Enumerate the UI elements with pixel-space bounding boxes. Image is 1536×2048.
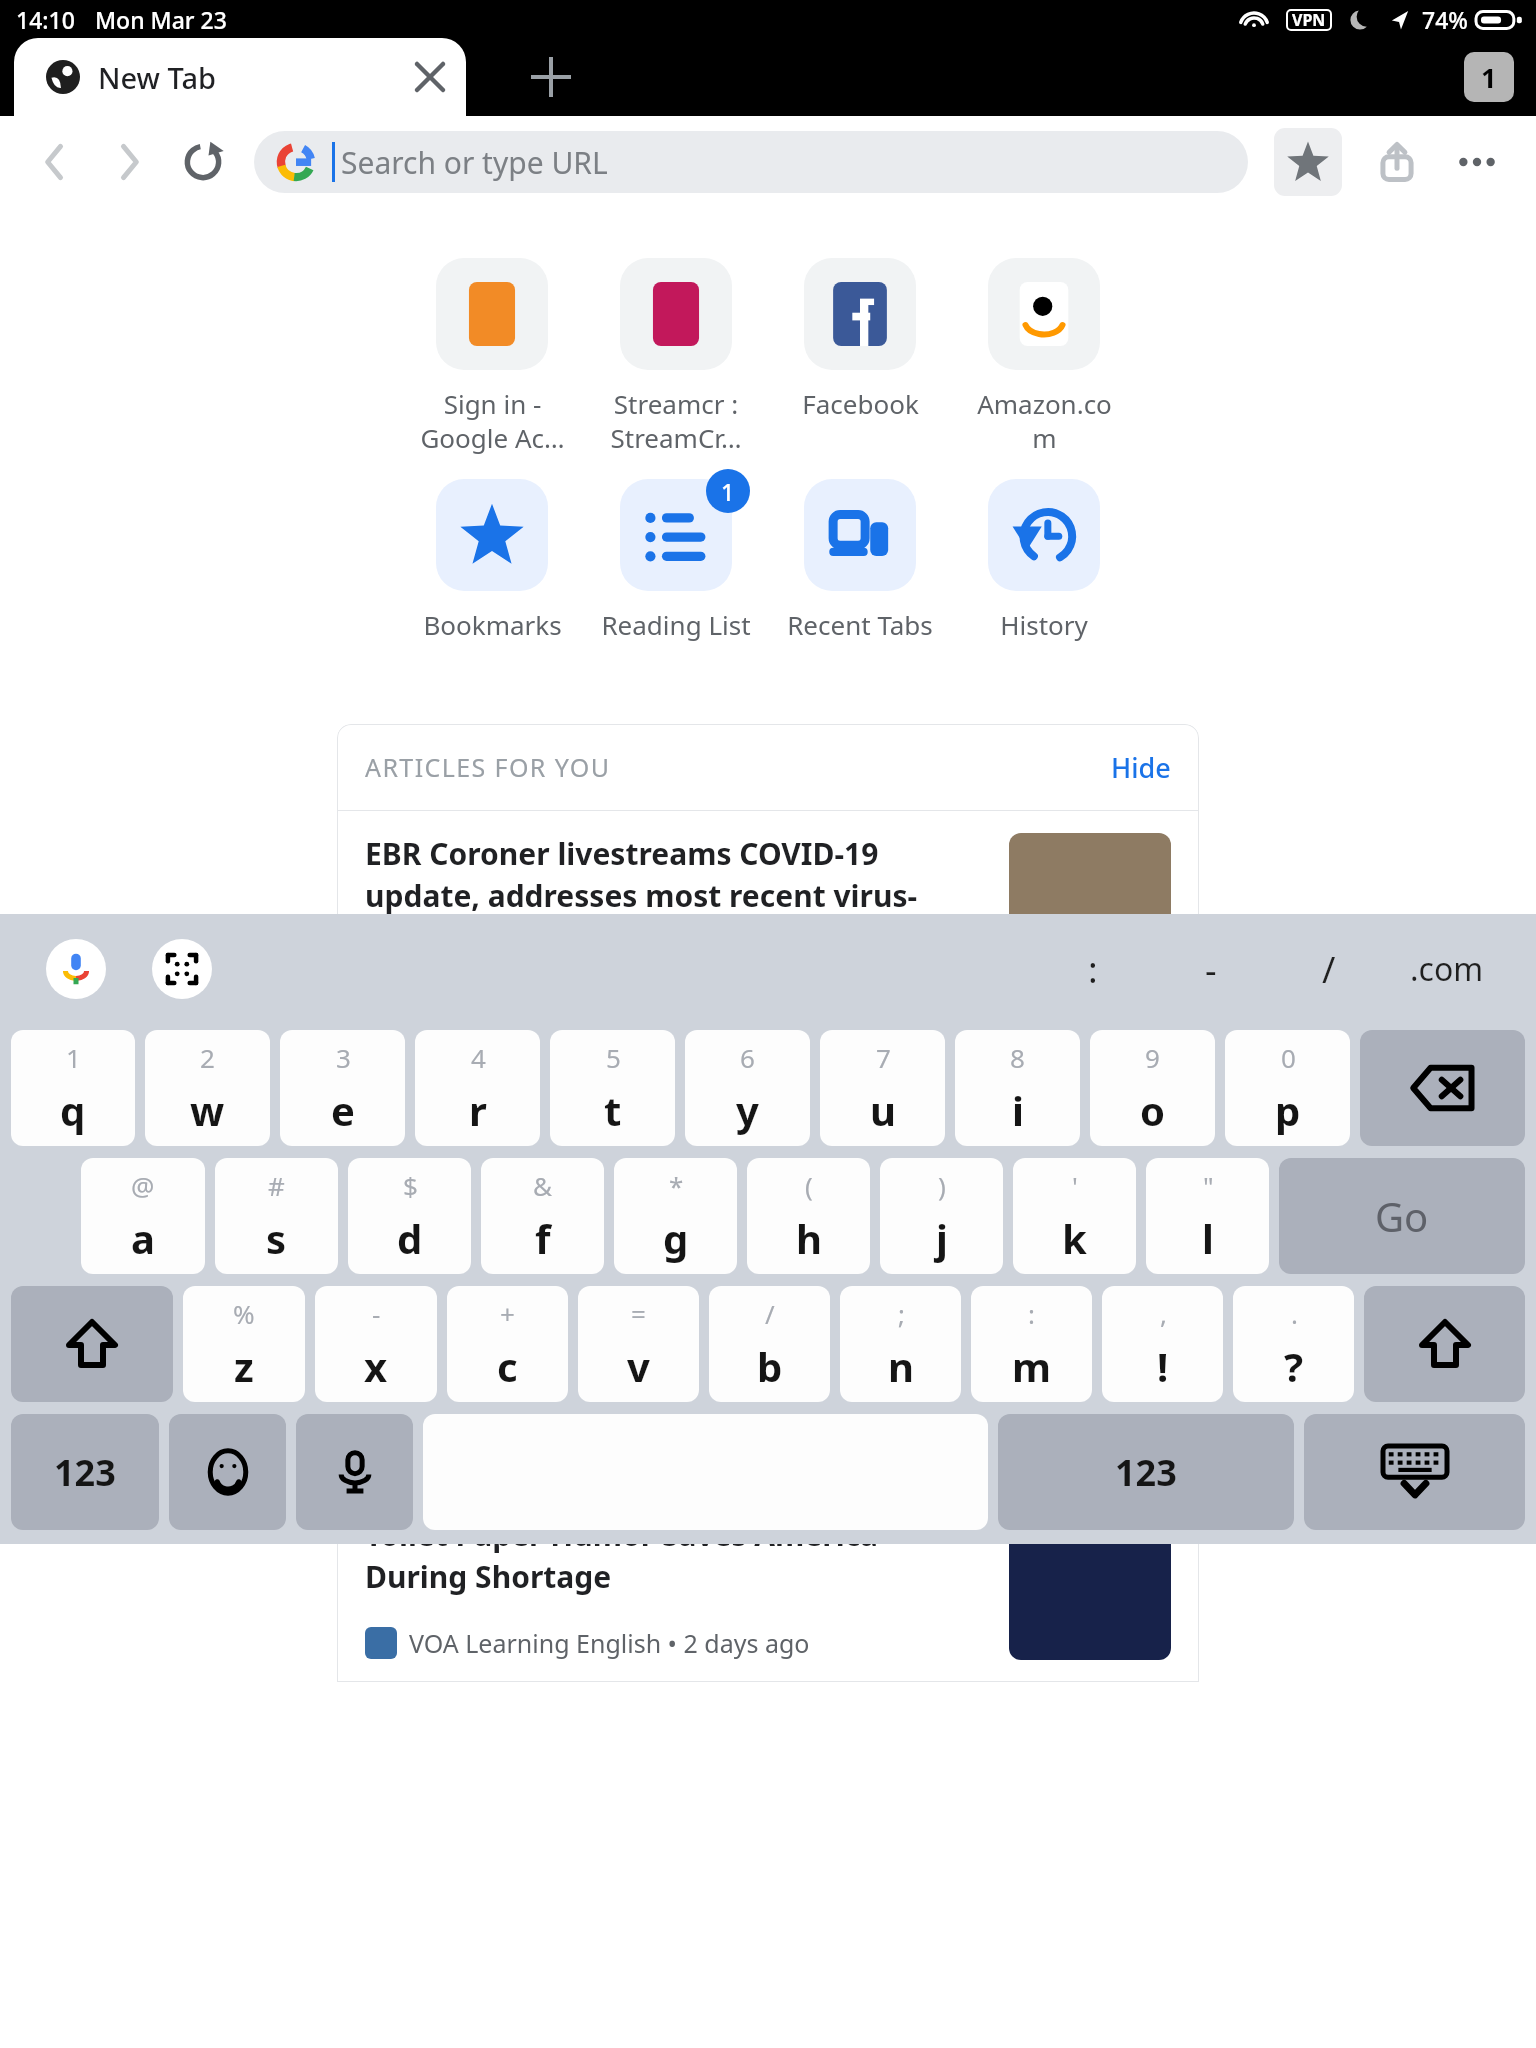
button[interactable]: Shift bbox=[11, 1286, 173, 1402]
button[interactable]: 7 bbox=[820, 1030, 945, 1146]
staticText: - bbox=[1205, 945, 1217, 994]
button[interactable]: 9 bbox=[1090, 1030, 1215, 1146]
button[interactable]: .com bbox=[1388, 926, 1506, 1012]
button[interactable]: ' bbox=[1013, 1158, 1136, 1274]
button[interactable]: Emoji bbox=[169, 1414, 286, 1530]
staticText: Bookmarks bbox=[423, 607, 562, 642]
button[interactable]: Bookmark bbox=[1274, 128, 1342, 196]
staticText: s bbox=[266, 1211, 287, 1265]
button[interactable]: @ bbox=[81, 1158, 205, 1274]
button[interactable]: More options bbox=[1440, 125, 1514, 199]
staticText: Facebook bbox=[802, 386, 919, 421]
staticText: c bbox=[497, 1339, 518, 1393]
button[interactable]: - bbox=[1152, 926, 1270, 1012]
staticText: e bbox=[331, 1083, 355, 1137]
button[interactable]: & bbox=[481, 1158, 604, 1274]
button[interactable]: " bbox=[1146, 1158, 1269, 1274]
button[interactable]: Tab switcher bbox=[1464, 52, 1514, 102]
button[interactable]: Amazon.co m bbox=[952, 258, 1136, 455]
button[interactable]: Hide keyboard bbox=[1304, 1414, 1525, 1530]
button[interactable]: Streamcr : StreamCr… bbox=[584, 258, 768, 455]
staticText: 4 bbox=[471, 1040, 486, 1075]
staticText: w bbox=[190, 1083, 225, 1137]
button[interactable]: Share bbox=[1360, 125, 1434, 199]
button[interactable]: Go bbox=[1279, 1158, 1525, 1274]
staticText: 8 bbox=[1010, 1040, 1025, 1075]
button[interactable]: * bbox=[614, 1158, 737, 1274]
button[interactable]: New Tab bbox=[14, 38, 466, 116]
button[interactable]: 6 bbox=[685, 1030, 810, 1146]
staticText: @ bbox=[131, 1168, 155, 1203]
staticText: p bbox=[1275, 1083, 1301, 1137]
staticText: 2 bbox=[200, 1040, 215, 1075]
staticText: u bbox=[870, 1083, 896, 1137]
staticText: z bbox=[234, 1339, 254, 1393]
staticText: , bbox=[1160, 1296, 1167, 1331]
staticText: Toilet Paper Humor Saves America During … bbox=[365, 1514, 879, 1597]
button[interactable]: ARTICLES FOR YOU bbox=[337, 724, 1199, 810]
button[interactable]: 1 bbox=[11, 1030, 135, 1146]
staticText: ? bbox=[1284, 1339, 1304, 1393]
staticText: 123 bbox=[54, 1448, 116, 1497]
staticText: Search or type URL bbox=[341, 142, 608, 183]
button[interactable]: EBR Coroner livestreams COVID-19 update,… bbox=[337, 811, 1199, 1141]
button[interactable]: Voice input bbox=[296, 1414, 413, 1530]
button[interactable]: - bbox=[315, 1286, 437, 1402]
button[interactable]: Sign in - Google Ac… bbox=[400, 258, 584, 455]
button[interactable]: ; bbox=[840, 1286, 961, 1402]
button[interactable]: Toilet Paper Humor Saves America During … bbox=[337, 1492, 1199, 1682]
button[interactable]: $ bbox=[348, 1158, 471, 1274]
button[interactable]: Back bbox=[18, 125, 92, 199]
button[interactable]: Backspace bbox=[1360, 1030, 1525, 1146]
staticText: Hide bbox=[1111, 749, 1171, 786]
staticText: o bbox=[1140, 1083, 1165, 1137]
button[interactable]: Facebook bbox=[768, 258, 952, 421]
button[interactable]: Shift bbox=[1364, 1286, 1525, 1402]
button[interactable]: . bbox=[1233, 1286, 1354, 1402]
button[interactable]: New tab bbox=[508, 38, 594, 116]
button[interactable]: , bbox=[1102, 1286, 1223, 1402]
button[interactable]: / bbox=[709, 1286, 830, 1402]
button[interactable]: TechRadar • 8 hours ago bbox=[337, 1142, 1199, 1292]
button[interactable]: 1 bbox=[584, 479, 768, 642]
staticText: m bbox=[1012, 1339, 1051, 1393]
button[interactable]: 4 bbox=[415, 1030, 540, 1146]
button[interactable]: Bookmarks bbox=[400, 479, 584, 642]
button[interactable]: Close tab bbox=[398, 45, 462, 109]
button[interactable]: + bbox=[447, 1286, 568, 1402]
button[interactable]: = bbox=[578, 1286, 699, 1402]
button[interactable]: / bbox=[1270, 926, 1388, 1012]
button[interactable]: Reload bbox=[166, 125, 240, 199]
button[interactable]: Search or type URL bbox=[254, 131, 1248, 193]
button[interactable]: 3 bbox=[280, 1030, 405, 1146]
staticText: + bbox=[500, 1296, 515, 1331]
staticText: y bbox=[736, 1083, 759, 1137]
button[interactable]: 8 bbox=[955, 1030, 1080, 1146]
staticText: h bbox=[796, 1211, 822, 1265]
button[interactable]: 123 bbox=[998, 1414, 1294, 1530]
button[interactable]: 2 bbox=[145, 1030, 270, 1146]
button[interactable]: Recent Tabs bbox=[768, 479, 952, 642]
staticText: ! bbox=[1157, 1339, 1169, 1393]
staticText: Reading List bbox=[601, 607, 751, 642]
button[interactable]: Google Lens bbox=[152, 939, 212, 999]
button[interactable]: : bbox=[1034, 926, 1152, 1012]
button[interactable]: ( bbox=[747, 1158, 870, 1274]
button[interactable]: 5 bbox=[550, 1030, 675, 1146]
button[interactable]: Forward bbox=[92, 125, 166, 199]
button[interactable]: : bbox=[971, 1286, 1092, 1402]
staticText: 1 bbox=[66, 1040, 81, 1075]
button[interactable]: How to clean and sanitize Xbox controlle… bbox=[337, 1293, 1199, 1491]
button[interactable]: Voice search bbox=[46, 939, 106, 999]
staticText: : bbox=[1088, 945, 1098, 994]
button[interactable]: 123 bbox=[11, 1414, 159, 1530]
button[interactable]: ) bbox=[880, 1158, 1003, 1274]
staticText: ARTICLES FOR YOU bbox=[365, 750, 611, 784]
button[interactable]: % bbox=[183, 1286, 305, 1402]
button[interactable]: History bbox=[952, 479, 1136, 642]
button[interactable]: # bbox=[215, 1158, 338, 1274]
staticText: .com bbox=[1410, 947, 1484, 991]
staticText: Streamcr : StreamCr… bbox=[610, 386, 742, 455]
button[interactable]: 0 bbox=[1225, 1030, 1350, 1146]
